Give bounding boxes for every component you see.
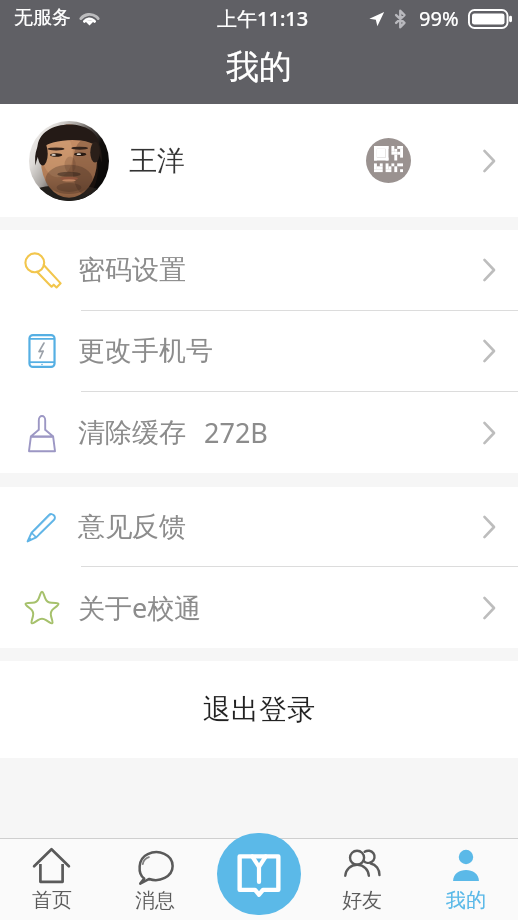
button[interactable]: 学习: [217, 833, 301, 915]
staticText: 意见反馈: [78, 510, 186, 544]
staticText: 关于e校通: [78, 589, 202, 626]
staticText: 上午11:13: [217, 5, 309, 32]
button[interactable]: 消息: [103, 838, 206, 920]
staticText: 272B: [204, 414, 268, 451]
staticText: 无服务: [14, 6, 71, 30]
button[interactable]: 好友: [310, 838, 414, 920]
button[interactable]: 二维码: [366, 138, 411, 183]
staticText: 消息: [135, 888, 175, 913]
staticText: 首页: [32, 888, 72, 913]
staticText: 好友: [342, 888, 382, 913]
staticText: 密码设置: [78, 253, 186, 287]
button[interactable]: 王洋: [0, 104, 518, 217]
staticText: 99%: [419, 5, 459, 32]
staticText: 王洋: [129, 143, 185, 178]
staticText: 清除缓存: [78, 416, 186, 450]
button[interactable]: 退出登录: [0, 661, 518, 758]
button[interactable]: 更改手机号: [0, 311, 518, 391]
button[interactable]: 密码设置: [0, 230, 518, 310]
staticText: 更改手机号: [78, 334, 213, 368]
staticText: 我的: [446, 888, 486, 913]
staticText: 退出登录: [203, 692, 315, 727]
button[interactable]: 我的: [414, 838, 518, 920]
staticText: 我的: [226, 46, 292, 88]
button[interactable]: 清除缓存: [0, 392, 518, 473]
button[interactable]: 意见反馈: [0, 487, 518, 566]
button[interactable]: 关于e校通: [0, 567, 518, 648]
button[interactable]: 首页: [0, 838, 103, 920]
